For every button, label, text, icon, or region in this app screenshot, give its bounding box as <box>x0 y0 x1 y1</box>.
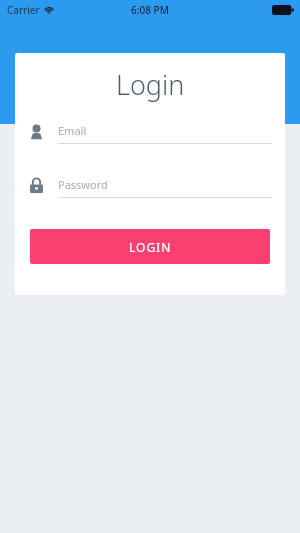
staticText: Email <box>58 123 87 138</box>
other: Battery full <box>272 5 294 15</box>
button[interactable]: Email field <box>28 115 272 147</box>
staticText: Carrier <box>7 3 40 17</box>
staticText: Login <box>116 66 185 103</box>
staticText: 6:08 PM <box>131 3 169 17</box>
other: Wi-Fi signal <box>44 5 54 15</box>
other: Password field <box>28 177 45 194</box>
staticText: LOGIN <box>129 239 172 255</box>
button[interactable]: Password field <box>28 169 272 201</box>
button[interactable]: LOGIN <box>30 229 270 264</box>
other: Email field <box>28 123 45 140</box>
staticText: Password <box>58 177 108 192</box>
